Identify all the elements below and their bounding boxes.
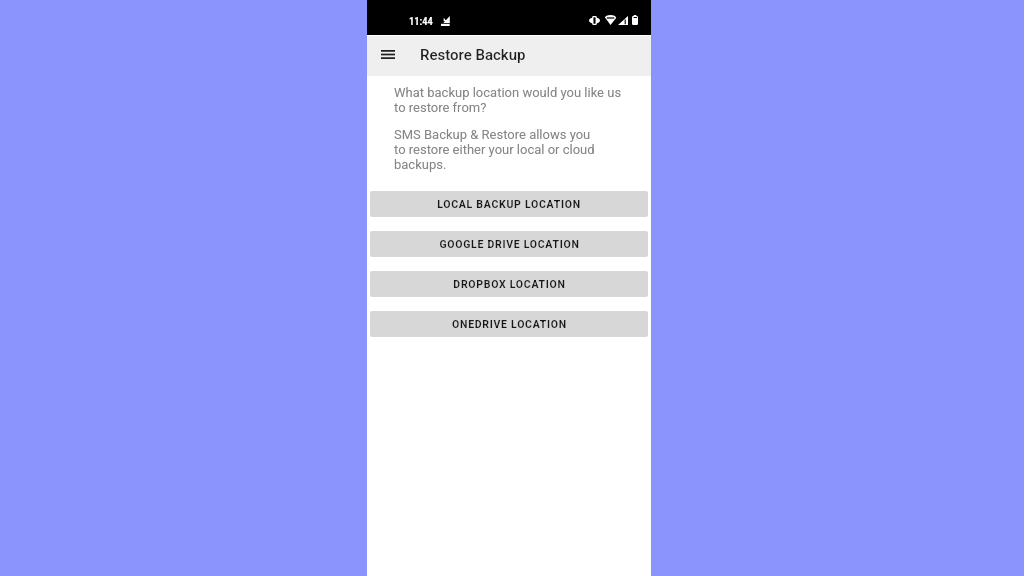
staticText: Restore Backup xyxy=(420,46,526,64)
staticText: 11:44 xyxy=(409,15,433,27)
staticText: LOCAL BACKUP LOCATION xyxy=(437,198,581,210)
button[interactable]: LOCAL BACKUP LOCATION xyxy=(370,191,648,217)
staticText: GOOGLE DRIVE LOCATION xyxy=(439,238,580,250)
button[interactable]: Open navigation menu xyxy=(368,36,408,76)
button[interactable]: DROPBOX LOCATION xyxy=(370,271,648,297)
staticText: DROPBOX LOCATION xyxy=(453,278,566,290)
staticText: ONEDRIVE LOCATION xyxy=(452,318,567,330)
staticText: SMS Backup & Restore allows you to resto… xyxy=(394,127,595,172)
button[interactable]: GOOGLE DRIVE LOCATION xyxy=(370,231,648,257)
staticText: What backup location would you like us t… xyxy=(394,85,622,115)
button[interactable]: ONEDRIVE LOCATION xyxy=(370,311,648,337)
